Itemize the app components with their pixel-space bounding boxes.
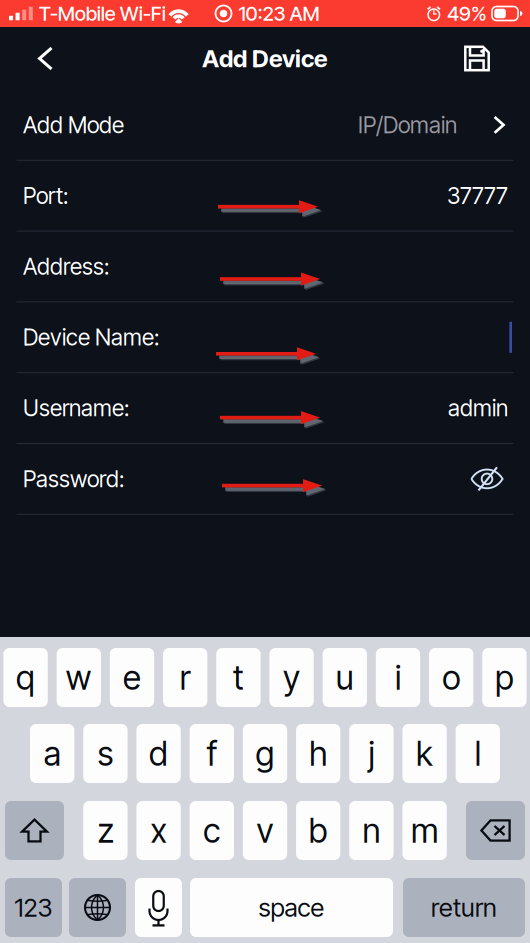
button[interactable]: c bbox=[190, 801, 234, 860]
button[interactable]: Save bbox=[442, 27, 530, 89]
button[interactable]: a bbox=[30, 724, 74, 783]
staticText: h bbox=[309, 733, 327, 774]
staticText: 49% bbox=[447, 1, 487, 26]
staticText: l bbox=[475, 733, 481, 774]
button[interactable]: f bbox=[190, 724, 234, 783]
staticText: Add Mode bbox=[23, 111, 124, 139]
staticText: b bbox=[309, 810, 328, 851]
staticText: m bbox=[411, 810, 438, 851]
staticText: return bbox=[431, 892, 497, 923]
button[interactable]: h bbox=[296, 724, 340, 783]
staticText: T-Mobile Wi-Fi bbox=[39, 1, 166, 26]
button[interactable]: space bbox=[190, 878, 393, 937]
staticText: Device Name: bbox=[23, 324, 159, 351]
button[interactable]: q bbox=[3, 648, 48, 707]
button[interactable]: v bbox=[243, 801, 287, 860]
staticText: t bbox=[233, 657, 244, 698]
staticText: g bbox=[255, 733, 274, 774]
button[interactable]: i bbox=[376, 648, 420, 707]
staticText: Port: bbox=[23, 182, 68, 209]
staticText: Address: bbox=[23, 253, 109, 280]
staticText: d bbox=[149, 733, 168, 774]
button[interactable]: g bbox=[243, 724, 287, 783]
staticText: 123 bbox=[14, 892, 52, 923]
button[interactable]: Delete bbox=[466, 801, 525, 860]
button[interactable]: s bbox=[83, 724, 127, 783]
staticText: o bbox=[442, 657, 460, 698]
button[interactable]: Back bbox=[0, 27, 76, 89]
button[interactable]: b bbox=[296, 801, 340, 860]
button[interactable]: j bbox=[349, 724, 393, 783]
staticText: w bbox=[66, 657, 92, 698]
button[interactable]: w bbox=[57, 648, 101, 707]
staticText: n bbox=[362, 810, 380, 851]
staticText: Add Device bbox=[202, 44, 328, 73]
button[interactable]: Show password bbox=[466, 462, 508, 496]
button[interactable]: Shift bbox=[5, 801, 64, 860]
button[interactable]: o bbox=[429, 648, 473, 707]
button[interactable]: return bbox=[403, 878, 525, 937]
staticText: r bbox=[180, 657, 191, 698]
staticText: k bbox=[416, 733, 433, 774]
button[interactable]: k bbox=[402, 724, 447, 783]
staticText: Password: bbox=[23, 465, 124, 493]
button[interactable]: l bbox=[456, 724, 500, 783]
button[interactable]: y bbox=[269, 648, 314, 707]
button[interactable]: e bbox=[110, 648, 154, 707]
staticText: p bbox=[495, 657, 514, 698]
staticText: q bbox=[16, 657, 35, 698]
staticText: x bbox=[151, 810, 167, 851]
button[interactable]: t bbox=[216, 648, 260, 707]
staticText: u bbox=[336, 657, 354, 698]
staticText: e bbox=[123, 657, 141, 698]
staticText: a bbox=[44, 733, 61, 774]
button[interactable]: Add Mode bbox=[0, 90, 530, 160]
button[interactable]: Dictate bbox=[135, 878, 182, 937]
button[interactable]: p bbox=[482, 648, 526, 707]
button[interactable]: z bbox=[83, 801, 127, 860]
button[interactable]: n bbox=[349, 801, 393, 860]
staticText: s bbox=[97, 733, 113, 774]
staticText: c bbox=[203, 810, 220, 851]
staticText: space bbox=[258, 892, 324, 923]
staticText: admin bbox=[448, 394, 508, 422]
button[interactable]: r bbox=[163, 648, 207, 707]
staticText: i bbox=[395, 657, 401, 698]
staticText: y bbox=[283, 657, 300, 698]
button[interactable]: u bbox=[323, 648, 367, 707]
staticText: j bbox=[368, 733, 374, 774]
staticText: v bbox=[256, 810, 273, 851]
button[interactable]: Next keyboard bbox=[69, 878, 126, 937]
staticText: z bbox=[97, 810, 113, 851]
button[interactable]: x bbox=[136, 801, 181, 860]
staticText: 10:23 AM bbox=[238, 1, 319, 26]
button[interactable]: d bbox=[136, 724, 181, 783]
staticText: IP/Domain bbox=[358, 111, 457, 139]
staticText: f bbox=[207, 733, 217, 774]
staticText: 37777 bbox=[447, 182, 508, 209]
button[interactable]: 123 bbox=[5, 878, 62, 937]
staticText: Username: bbox=[23, 394, 129, 422]
button[interactable]: m bbox=[402, 801, 447, 860]
